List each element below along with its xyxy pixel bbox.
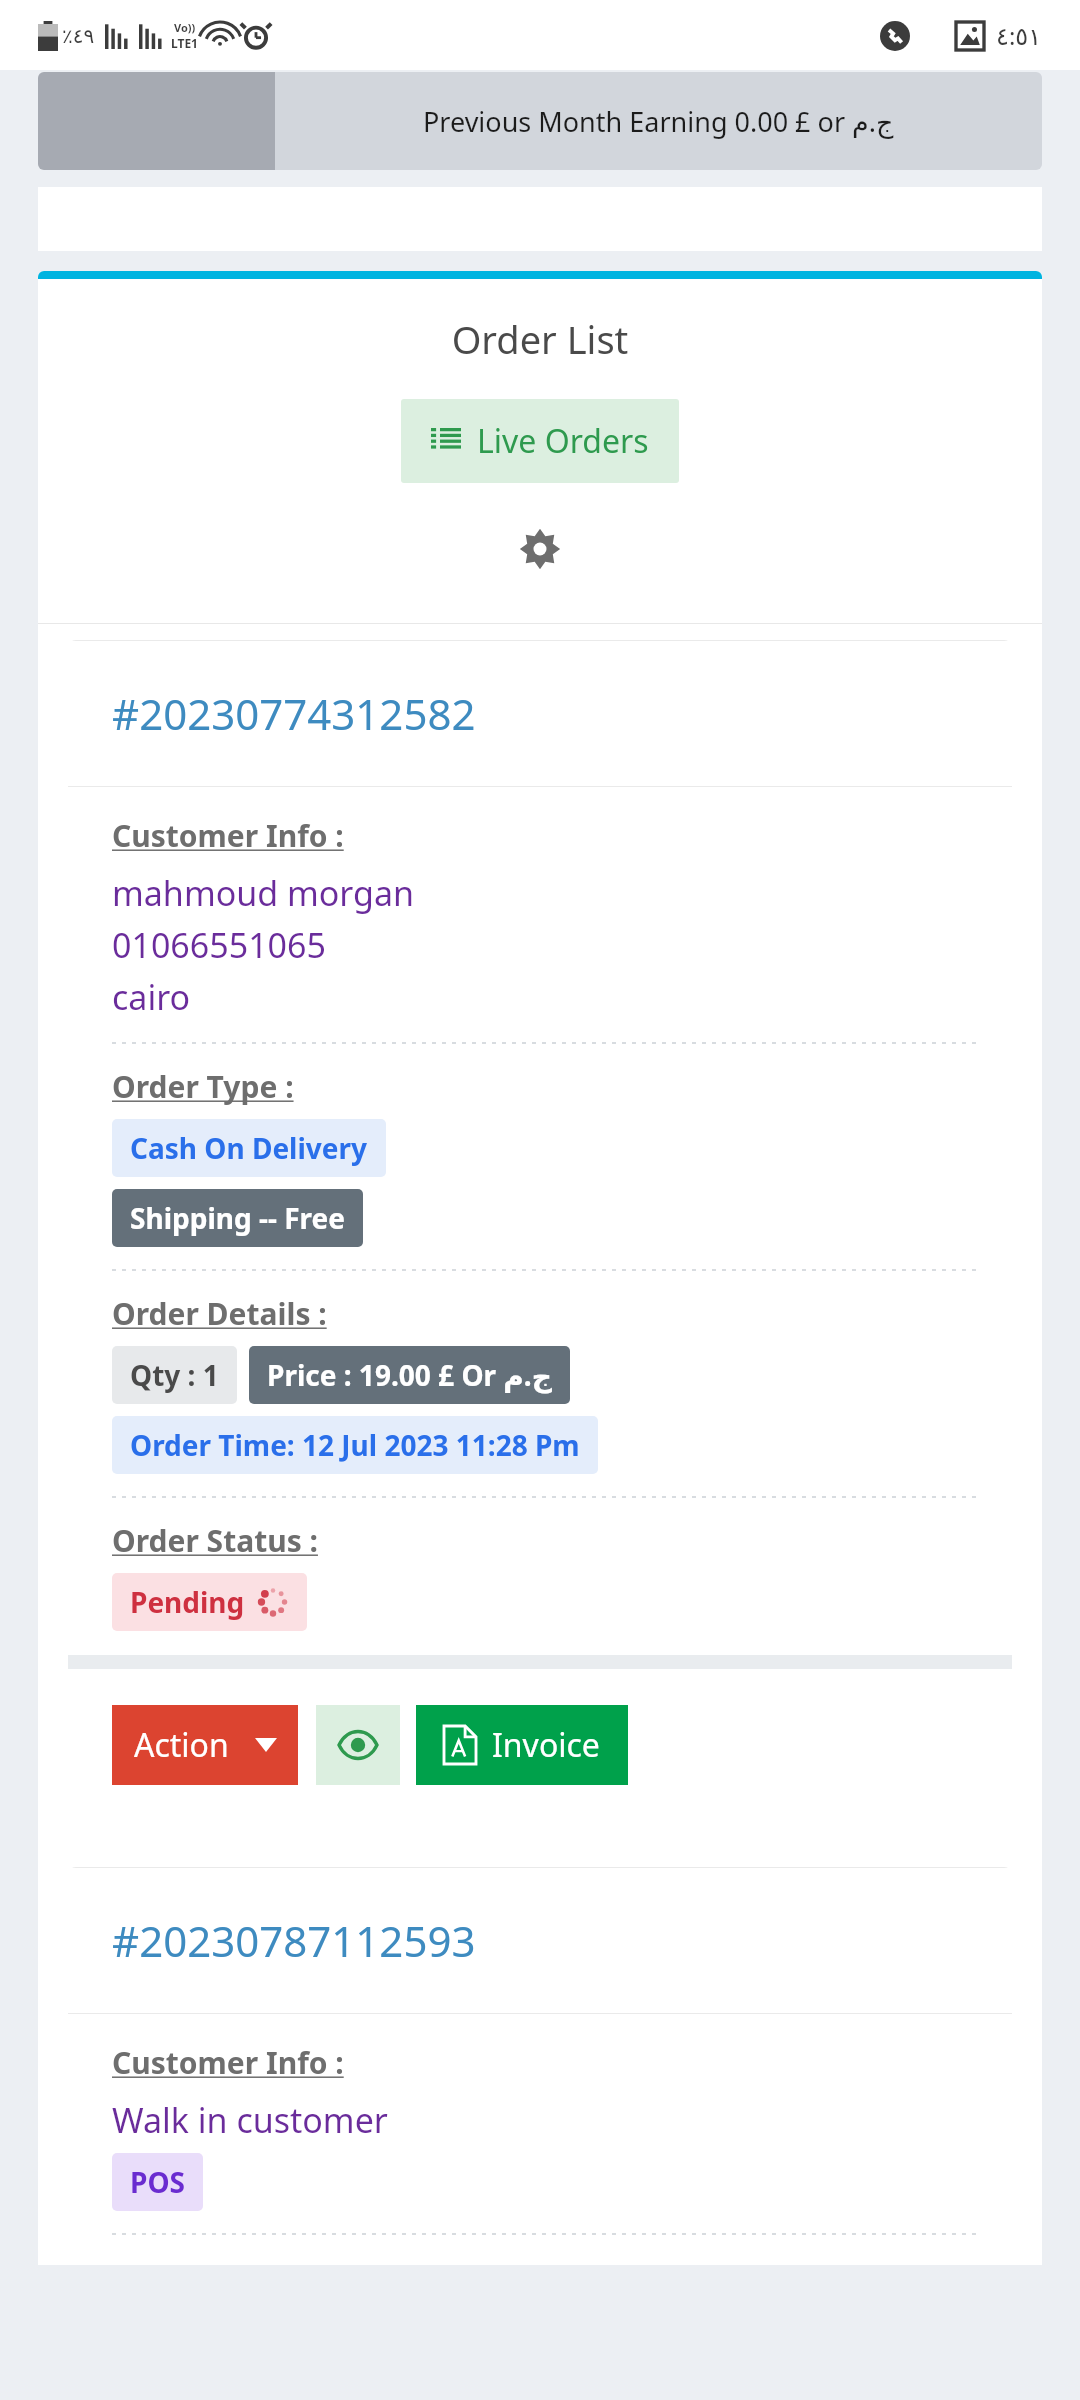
button[interactable]: #20230787112593	[112, 1912, 476, 1969]
staticText: Qty : 1	[130, 1356, 219, 1394]
staticText: Order Details :	[112, 1293, 327, 1334]
staticText: Shipping -- Free	[130, 1199, 345, 1237]
staticText: Action	[134, 1723, 229, 1767]
staticText: Pending	[130, 1583, 245, 1621]
staticText: Vo))	[174, 20, 196, 35]
button[interactable]: Invoice	[416, 1705, 628, 1785]
staticText: cairo	[112, 974, 191, 1020]
staticText: Walk in customer	[112, 2097, 388, 2143]
staticText: ٪٤٩	[62, 24, 95, 47]
staticText: Order Status :	[112, 1520, 318, 1561]
button[interactable]: Settings	[510, 519, 570, 579]
staticText: Live Orders	[477, 419, 649, 463]
staticText: Order Type :	[112, 1066, 294, 1107]
staticText: LTE1	[171, 35, 198, 51]
staticText: Order Time: 12 Jul 2023 11:28 Pm	[130, 1426, 580, 1464]
staticText: Invoice	[492, 1723, 600, 1767]
button[interactable]: View order	[316, 1705, 400, 1785]
staticText: Price : 19.00 £ Or ج.م	[267, 1356, 552, 1394]
staticText: ٤:٥١	[996, 19, 1042, 52]
staticText: Customer Info :	[112, 815, 344, 856]
button[interactable]: #20230774312582	[112, 685, 476, 742]
button[interactable]: Action	[112, 1705, 298, 1785]
staticText: Previous Month Earning 0.00 £ or ج.م	[423, 103, 894, 140]
staticText: POS	[130, 2163, 185, 2201]
staticText: mahmoud morgan	[112, 870, 415, 916]
staticText: Customer Info :	[112, 2042, 344, 2083]
staticText: Cash On Delivery	[130, 1129, 368, 1167]
staticText: 01066551065	[112, 922, 326, 968]
staticText: Order List	[38, 313, 1042, 365]
button[interactable]: Live Orders	[401, 399, 679, 483]
